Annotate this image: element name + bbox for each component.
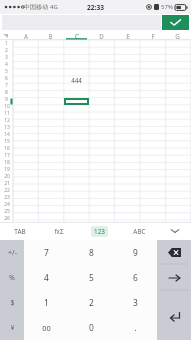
button[interactable]: ¥: [0, 315, 24, 340]
button[interactable]: 16: [0, 145, 13, 152]
staticText: 6: [133, 272, 138, 283]
button[interactable]: 9: [113, 240, 157, 265]
staticText: 444: [71, 76, 82, 83]
button[interactable]: E: [115, 31, 140, 40]
button[interactable]: +/-: [0, 240, 24, 265]
button[interactable]: ABC: [119, 222, 159, 240]
staticText: 24: [4, 201, 10, 208]
staticText: 8: [5, 89, 8, 96]
staticText: 4G: [50, 3, 58, 11]
staticText: 9: [133, 247, 138, 258]
button[interactable]: 7: [0, 82, 13, 89]
button[interactable]: 00: [24, 315, 69, 340]
button[interactable]: 19: [0, 166, 13, 173]
button[interactable]: Next: [157, 265, 191, 290]
button[interactable]: C: [64, 31, 89, 40]
staticText: 00: [42, 323, 51, 333]
staticText: 5: [5, 68, 8, 75]
staticText: 19: [4, 166, 10, 173]
staticText: 20: [4, 173, 10, 180]
button[interactable]: 5: [0, 68, 13, 75]
staticText: 16: [4, 145, 10, 152]
button[interactable]: Hide keyboard: [159, 222, 191, 240]
button[interactable]: 7: [24, 240, 69, 265]
button[interactable]: 25: [0, 208, 13, 215]
button[interactable]: 20: [0, 173, 13, 180]
button[interactable]: 123: [79, 222, 119, 240]
button[interactable]: 6: [113, 265, 157, 290]
staticText: 2: [89, 297, 94, 308]
button[interactable]: 3: [0, 54, 13, 61]
button[interactable]: D: [89, 31, 114, 40]
staticText: 4: [44, 272, 49, 283]
button[interactable]: 14: [0, 131, 13, 138]
staticText: F: [151, 32, 155, 40]
button[interactable]: 17: [0, 152, 13, 159]
button[interactable]: 24: [0, 201, 13, 208]
button[interactable]: $: [0, 290, 24, 315]
staticText: 8: [89, 247, 94, 258]
button[interactable]: .: [113, 315, 157, 340]
staticText: TAB: [14, 227, 26, 236]
staticText: 18: [4, 159, 10, 166]
button[interactable]: 15: [0, 138, 13, 145]
button[interactable]: G: [165, 31, 190, 40]
button[interactable]: 2: [69, 290, 113, 315]
staticText: 1: [44, 297, 49, 308]
staticText: 22:33: [87, 3, 104, 12]
staticText: 57%: [161, 3, 173, 11]
button[interactable]: 4: [0, 61, 13, 68]
button[interactable]: [64, 98, 89, 105]
staticText: ABC: [133, 227, 146, 236]
button[interactable]: 18: [0, 159, 13, 166]
button[interactable]: B: [38, 31, 63, 40]
staticText: 7: [44, 247, 49, 258]
button[interactable]: 8: [0, 89, 13, 96]
button[interactable]: 11: [0, 110, 13, 117]
staticText: 1: [5, 40, 8, 47]
button[interactable]: 6: [0, 75, 13, 82]
staticText: 123: [94, 227, 105, 236]
staticText: 5: [89, 272, 94, 283]
button[interactable]: 22: [0, 187, 13, 194]
button[interactable]: 2: [0, 47, 13, 54]
staticText: D: [99, 32, 104, 40]
button[interactable]: Enter: [157, 291, 191, 340]
staticText: 14: [4, 131, 10, 138]
staticText: .: [134, 322, 137, 333]
staticText: 17: [4, 152, 10, 159]
button[interactable]: %: [0, 265, 24, 290]
button[interactable]: 1: [24, 290, 69, 315]
staticText: $: [10, 298, 15, 308]
button[interactable]: 21: [0, 180, 13, 187]
button[interactable]: 12: [0, 117, 13, 124]
button[interactable]: Confirm: [162, 15, 189, 30]
button[interactable]: 5: [69, 265, 113, 290]
staticText: %: [9, 273, 15, 283]
staticText: 22: [4, 187, 10, 194]
button[interactable]: 4: [24, 265, 69, 290]
button[interactable]: fxΣ: [39, 222, 79, 240]
staticText: 26: [4, 215, 10, 222]
staticText: 9: [5, 96, 8, 103]
button[interactable]: TAB: [0, 222, 39, 240]
button[interactable]: 9: [0, 96, 13, 103]
staticText: 4: [5, 61, 8, 68]
staticText: 13: [4, 124, 10, 131]
staticText: 10: [4, 103, 10, 110]
button[interactable]: 10: [0, 103, 13, 110]
button[interactable]: 8: [69, 240, 113, 265]
button[interactable]: Backspace: [157, 240, 191, 264]
button[interactable]: 3: [113, 290, 157, 315]
staticText: E: [126, 32, 130, 40]
staticText: 25: [4, 208, 10, 215]
button[interactable]: 26: [0, 215, 13, 222]
button[interactable]: 13: [0, 124, 13, 131]
button[interactable]: A: [13, 31, 38, 40]
button[interactable]: 1: [0, 40, 13, 47]
staticText: C: [75, 32, 79, 40]
button[interactable]: 23: [0, 194, 13, 201]
button[interactable]: 0: [69, 315, 113, 340]
button[interactable]: F: [140, 31, 165, 40]
